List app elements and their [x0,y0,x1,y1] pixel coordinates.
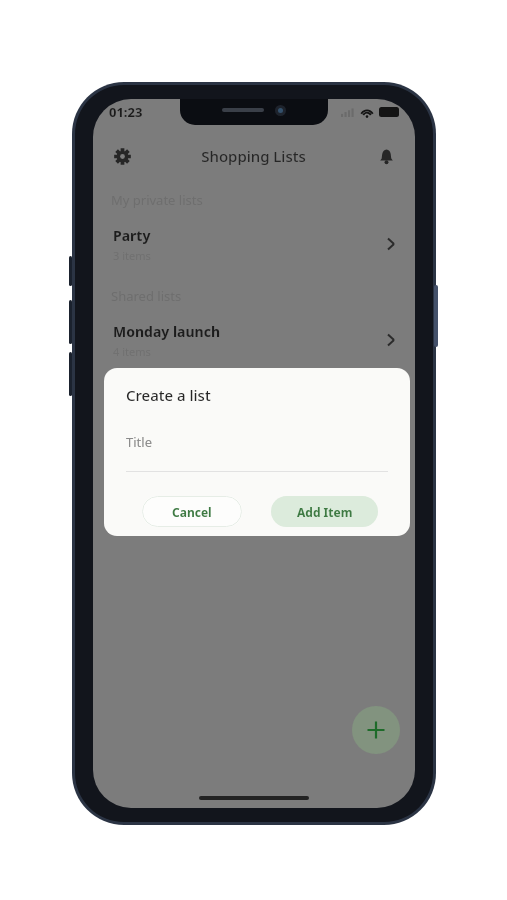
staticText: 01:23 [109,103,143,121]
button[interactable]: Settings [107,141,137,171]
staticText: Monday launch [113,322,221,341]
staticText: Create a list [126,385,211,405]
staticText: Shopping Lists [201,146,306,166]
button[interactable]: Add Item [271,496,378,527]
button[interactable]: Party [93,223,415,265]
staticText: 4 items [113,344,151,359]
staticText: My private lists [111,191,203,209]
staticText: Shared lists [111,287,182,305]
staticText: Cancel [172,504,212,520]
button[interactable]: Notifications [371,141,401,171]
button[interactable]: Monday launch [93,319,415,361]
button[interactable]: Add list [352,706,400,754]
staticText: 3 items [113,248,151,263]
button[interactable]: Cancel [142,496,242,527]
staticText: Add Item [297,504,353,520]
staticText: Title [126,433,152,451]
staticText: Party [113,226,151,245]
